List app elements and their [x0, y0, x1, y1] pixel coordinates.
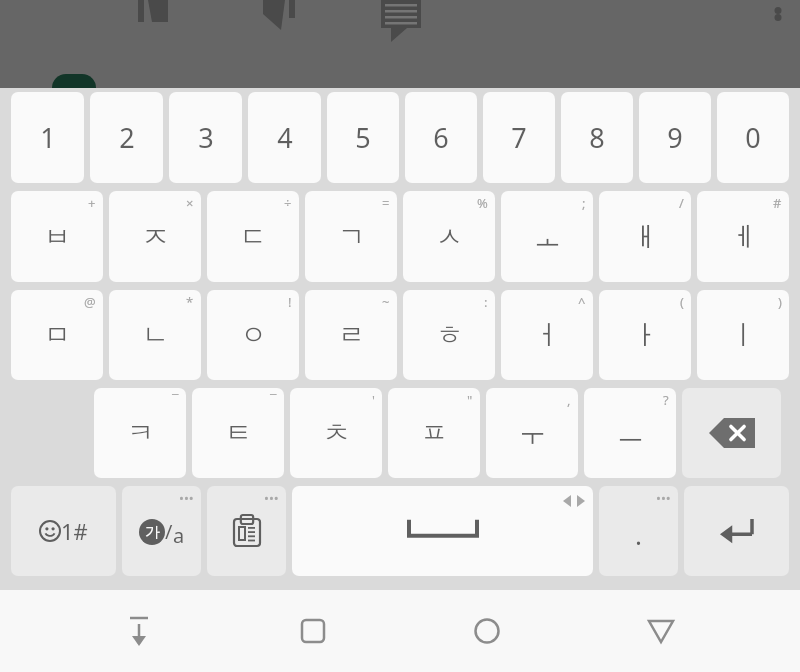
other: Change language: [139, 514, 185, 549]
staticText: #: [773, 194, 782, 212]
staticText: ㅁ: [44, 318, 71, 352]
button[interactable]: 8: [561, 92, 633, 183]
staticText: a: [173, 522, 185, 549]
button[interactable]: ㅇ: [207, 290, 299, 380]
button[interactable]: ㅊ: [290, 388, 382, 478]
staticText: ㅗ: [534, 220, 561, 254]
staticText: ': [372, 391, 375, 409]
staticText: ㄱ: [338, 220, 365, 254]
button[interactable]: ㅏ: [599, 290, 691, 380]
button[interactable]: Enter: [684, 486, 789, 576]
button[interactable]: ㅎ: [403, 290, 495, 380]
other: Space: [292, 486, 593, 576]
button[interactable]: Backspace: [682, 388, 781, 478]
button[interactable]: 3: [169, 92, 242, 183]
staticText: 7: [511, 119, 527, 156]
staticText: •••: [264, 489, 279, 507]
staticText: ㅈ: [142, 220, 169, 254]
staticText: ㅐ: [632, 220, 659, 254]
staticText: 가: [145, 523, 160, 542]
other: Clipboard: [233, 515, 261, 547]
staticText: ,: [567, 391, 571, 409]
staticText: ^: [578, 293, 586, 311]
button[interactable]: Clipboard: [207, 486, 286, 576]
staticText: ;: [582, 194, 586, 212]
staticText: 4: [277, 119, 293, 156]
button[interactable]: ㅓ: [501, 290, 593, 380]
button[interactable]: More options: [756, 0, 800, 34]
staticText: ㅂ: [44, 220, 71, 254]
staticText: 8: [589, 119, 605, 156]
staticText: 9: [667, 119, 683, 156]
staticText: @: [84, 293, 96, 311]
staticText: 5: [355, 119, 371, 156]
staticText: ㅡ: [617, 416, 644, 450]
staticText: +: [88, 194, 96, 212]
button[interactable]: 2: [90, 92, 163, 183]
button[interactable]: ㄴ: [109, 290, 201, 380]
button[interactable]: Space: [292, 486, 593, 576]
button[interactable]: Hide keyboard: [104, 596, 174, 666]
staticText: ×: [186, 194, 194, 212]
button[interactable]: ㅁ: [11, 290, 103, 380]
staticText: •••: [656, 489, 671, 507]
button[interactable]: ㅗ: [501, 191, 593, 282]
staticText: !: [288, 293, 292, 311]
staticText: ÷: [284, 194, 292, 212]
staticText: ~: [382, 293, 390, 311]
staticText: ㅅ: [436, 220, 463, 254]
staticText: ": [467, 391, 473, 409]
button[interactable]: Recents: [278, 596, 348, 666]
staticText: ‾: [270, 391, 277, 409]
staticText: ㅊ: [323, 416, 350, 450]
staticText: :: [484, 293, 488, 311]
staticText: %: [477, 194, 488, 212]
button[interactable]: Change language: [122, 486, 201, 576]
staticText: =: [382, 194, 390, 212]
button[interactable]: 6: [405, 92, 477, 183]
staticText: *: [186, 293, 194, 311]
button[interactable]: 9: [639, 92, 711, 183]
button[interactable]: ㅌ: [192, 388, 284, 478]
button[interactable]: ㅔ: [697, 191, 789, 282]
button[interactable]: ㅣ: [697, 290, 789, 380]
button[interactable]: 0: [717, 92, 789, 183]
button[interactable]: ㅅ: [403, 191, 495, 282]
staticText: ㅜ: [519, 416, 546, 450]
button[interactable]: 4: [248, 92, 321, 183]
button[interactable]: ㄹ: [305, 290, 397, 380]
button[interactable]: 7: [483, 92, 555, 183]
staticText: 1: [40, 119, 56, 156]
button[interactable]: 5: [327, 92, 399, 183]
staticText: ㅓ: [534, 318, 561, 352]
staticText: ㄹ: [338, 318, 365, 352]
staticText: ?: [663, 391, 669, 409]
button[interactable]: ㅋ: [94, 388, 186, 478]
button[interactable]: ㅍ: [388, 388, 480, 478]
staticText: 1#: [61, 516, 88, 546]
button[interactable]: Back: [626, 596, 696, 666]
staticText: ‾: [172, 391, 179, 409]
button[interactable]: ㅜ: [486, 388, 578, 478]
staticText: .: [635, 517, 642, 552]
button[interactable]: 1#: [11, 486, 116, 576]
button[interactable]: .: [599, 486, 678, 576]
button[interactable]: 1: [11, 92, 84, 183]
staticText: ㅌ: [225, 416, 252, 450]
other: Backspace: [682, 388, 781, 478]
button[interactable]: ㅡ: [584, 388, 676, 478]
staticText: 2: [119, 119, 135, 156]
button[interactable]: ㅂ: [11, 191, 103, 282]
button[interactable]: Home: [452, 596, 522, 666]
button[interactable]: ㄱ: [305, 191, 397, 282]
staticText: ㄴ: [142, 318, 169, 352]
staticText: /: [165, 518, 173, 545]
button[interactable]: ㅈ: [109, 191, 201, 282]
staticText: ㅇ: [240, 318, 267, 352]
staticText: ): [778, 293, 782, 311]
button[interactable]: ㅐ: [599, 191, 691, 282]
staticText: /: [679, 194, 684, 212]
staticText: ㅔ: [730, 220, 757, 254]
staticText: ㅍ: [421, 416, 448, 450]
button[interactable]: ㄷ: [207, 191, 299, 282]
